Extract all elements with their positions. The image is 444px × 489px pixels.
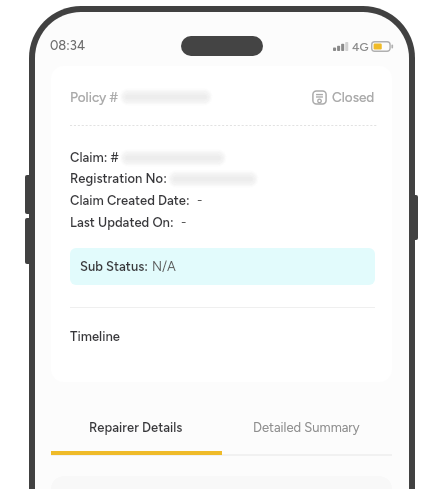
staticText: N/A [152,259,176,275]
button[interactable]: Detailed Summary [221,412,392,462]
staticText: Claim Created Date: [70,193,190,209]
staticText: 08:34 [50,38,86,54]
staticText: Last Updated On: [70,215,174,231]
staticText: Claim: # [70,150,119,166]
staticText: - [197,193,203,209]
staticText: Closed [332,89,375,105]
button[interactable]: Repairer Details [51,412,221,462]
staticText: Timeline [70,329,120,345]
staticText: - [181,215,187,231]
button[interactable]: Claim status Closed [312,89,375,105]
staticText: Policy # [70,89,119,105]
staticText: Repairer Details [89,420,183,436]
staticText: Detailed Summary [253,420,360,436]
staticText: Sub Status: [80,259,152,275]
staticText: 4G [352,40,369,54]
staticText: Registration No: [70,171,167,187]
